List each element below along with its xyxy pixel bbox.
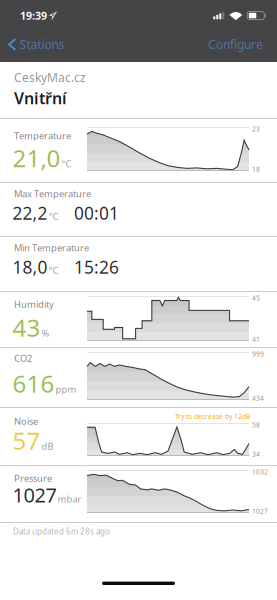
staticText: 18,0: [12, 255, 47, 278]
staticText: Vnitřní: [14, 87, 67, 109]
staticText: ppm: [55, 383, 76, 395]
staticText: 41: [252, 335, 260, 343]
staticText: mbar: [57, 493, 81, 505]
staticText: 45: [252, 293, 260, 302]
staticText: 434: [252, 394, 264, 402]
staticText: °C: [48, 264, 58, 276]
button[interactable]: CO2: [0, 348, 277, 407]
button[interactable]: Stations: [9, 36, 64, 52]
staticText: 58: [252, 420, 260, 429]
staticText: CeskyMac.cz: [14, 69, 86, 85]
staticText: Noise: [14, 415, 38, 427]
button[interactable]: Pressure: [0, 466, 277, 522]
staticText: 1032: [252, 467, 268, 476]
staticText: 21,0: [12, 142, 60, 174]
staticText: %: [41, 327, 49, 339]
button[interactable]: Max Temperature: [0, 183, 277, 236]
staticText: Stations: [19, 36, 64, 52]
button[interactable]: Noise: [0, 408, 277, 465]
staticText: 34: [252, 450, 260, 458]
staticText: 22,2: [12, 201, 47, 224]
staticText: Max Temperature: [14, 187, 91, 200]
staticText: 1027: [252, 507, 268, 515]
staticText: dB: [41, 440, 53, 452]
staticText: °C: [61, 157, 71, 170]
staticText: Configure: [208, 36, 263, 52]
staticText: 616: [12, 367, 54, 399]
staticText: CO2: [14, 352, 32, 364]
staticText: 43: [12, 311, 40, 343]
staticText: °C: [48, 210, 58, 222]
staticText: Temperature: [14, 129, 71, 142]
staticText: 23: [252, 124, 260, 133]
staticText: 15:26: [74, 255, 119, 278]
staticText: Data updated 6m 28s ago: [13, 526, 110, 537]
staticText: 57: [12, 424, 40, 456]
staticText: Humidity: [14, 298, 54, 310]
staticText: Pressure: [14, 472, 52, 484]
staticText: Try to decrease by 12dB: [175, 412, 250, 421]
staticText: 19:39: [20, 8, 47, 23]
button[interactable]: Configure: [208, 36, 263, 52]
button[interactable]: Temperature: [0, 119, 277, 182]
button[interactable]: Min Temperature: [0, 237, 277, 291]
staticText: 999: [252, 349, 264, 358]
staticText: 00:01: [74, 201, 119, 224]
staticText: 18: [252, 165, 260, 173]
staticText: Min Temperature: [14, 241, 89, 254]
button[interactable]: Humidity: [0, 292, 277, 347]
staticText: 1027: [12, 481, 56, 508]
